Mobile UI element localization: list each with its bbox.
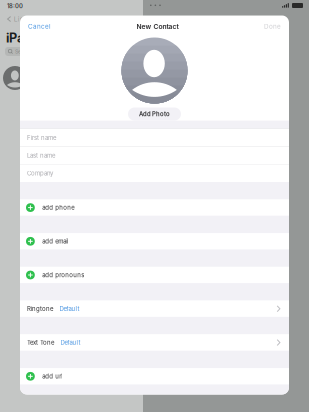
button[interactable]: Text Tone [20,334,289,351]
staticText: First name [27,134,56,141]
staticText: iPad [6,30,32,45]
button[interactable]: add email [20,233,289,249]
button[interactable]: Done [256,18,289,35]
button[interactable]: add url [20,368,289,384]
staticText: Add Photo [139,110,170,118]
staticText: 18:00 [7,2,23,10]
button[interactable]: add phone [20,199,289,216]
staticText: add email [42,238,68,245]
staticText: add url [42,373,62,380]
staticText: Search [15,48,32,55]
staticText: Lists [14,15,30,23]
button[interactable]: Add Photo [128,107,181,121]
staticText: add pronouns [42,271,84,279]
staticText: Company [27,170,53,177]
staticText: New Contact [136,22,178,31]
button[interactable]: add pronouns [20,267,289,283]
staticText: Default [60,339,80,346]
staticText: Last name [27,152,55,159]
staticText: Text Tone [27,339,54,346]
staticText: add phone [42,204,74,211]
staticText: Ringtone [27,305,53,312]
staticText: Done [264,23,281,30]
button[interactable]: Ringtone [20,301,289,317]
button[interactable]: Cancel [20,18,59,35]
staticText: Default [59,305,79,312]
staticText: Cancel [28,23,51,30]
